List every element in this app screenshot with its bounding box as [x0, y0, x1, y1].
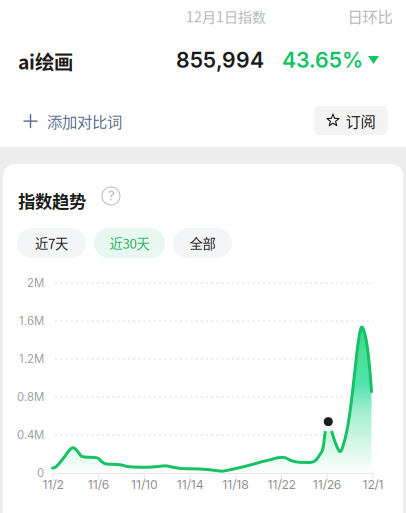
- button[interactable]: 添加对比词: [21, 103, 124, 139]
- staticText: 11/18: [222, 477, 249, 492]
- button[interactable]: Help: [102, 187, 120, 205]
- staticText: 近30天: [109, 233, 149, 253]
- staticText: 11/2: [42, 477, 63, 492]
- staticText: 0.8M: [17, 390, 44, 404]
- staticText: 12月1日指数: [186, 6, 266, 26]
- staticText: 1.2M: [19, 352, 44, 366]
- staticText: 11/6: [88, 477, 110, 492]
- button[interactable]: 全部: [173, 228, 232, 258]
- staticText: 43.65%: [282, 47, 363, 73]
- staticText: 0.4M: [17, 428, 44, 442]
- staticText: 855,994: [176, 47, 264, 73]
- staticText: ai绘画: [18, 47, 73, 75]
- staticText: 0: [37, 466, 44, 480]
- staticText: 11/14: [177, 477, 204, 492]
- button[interactable]: 订阅: [314, 106, 388, 135]
- staticText: 11/22: [268, 477, 296, 492]
- staticText: 11/10: [131, 477, 158, 492]
- staticText: 全部: [189, 233, 215, 253]
- staticText: 日环比: [347, 5, 392, 27]
- staticText: 1.6M: [19, 314, 44, 328]
- staticText: 12/1: [362, 477, 383, 492]
- button[interactable]: 近7天: [17, 228, 86, 258]
- staticText: 添加对比词: [47, 110, 122, 132]
- staticText: 11/26: [313, 477, 342, 492]
- staticText: 2M: [27, 276, 44, 290]
- button[interactable]: 近30天: [94, 228, 165, 258]
- staticText: 指数趋势: [18, 188, 86, 213]
- staticText: ?: [108, 188, 114, 204]
- staticText: 订阅: [345, 109, 375, 132]
- staticText: 近7天: [35, 233, 68, 253]
